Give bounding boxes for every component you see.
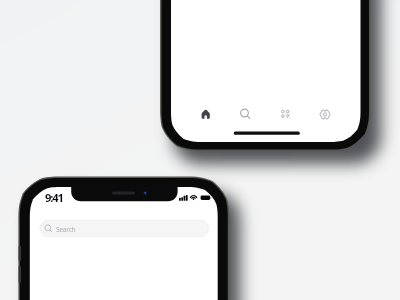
button[interactable]: Settings [314, 103, 336, 125]
button[interactable]: Search [40, 220, 208, 237]
button[interactable]: Search [235, 103, 257, 125]
staticText: 9:41 [45, 190, 63, 205]
button[interactable]: Home [196, 103, 218, 125]
staticText: Search [56, 225, 76, 234]
button[interactable]: Scan QR code [274, 103, 296, 125]
